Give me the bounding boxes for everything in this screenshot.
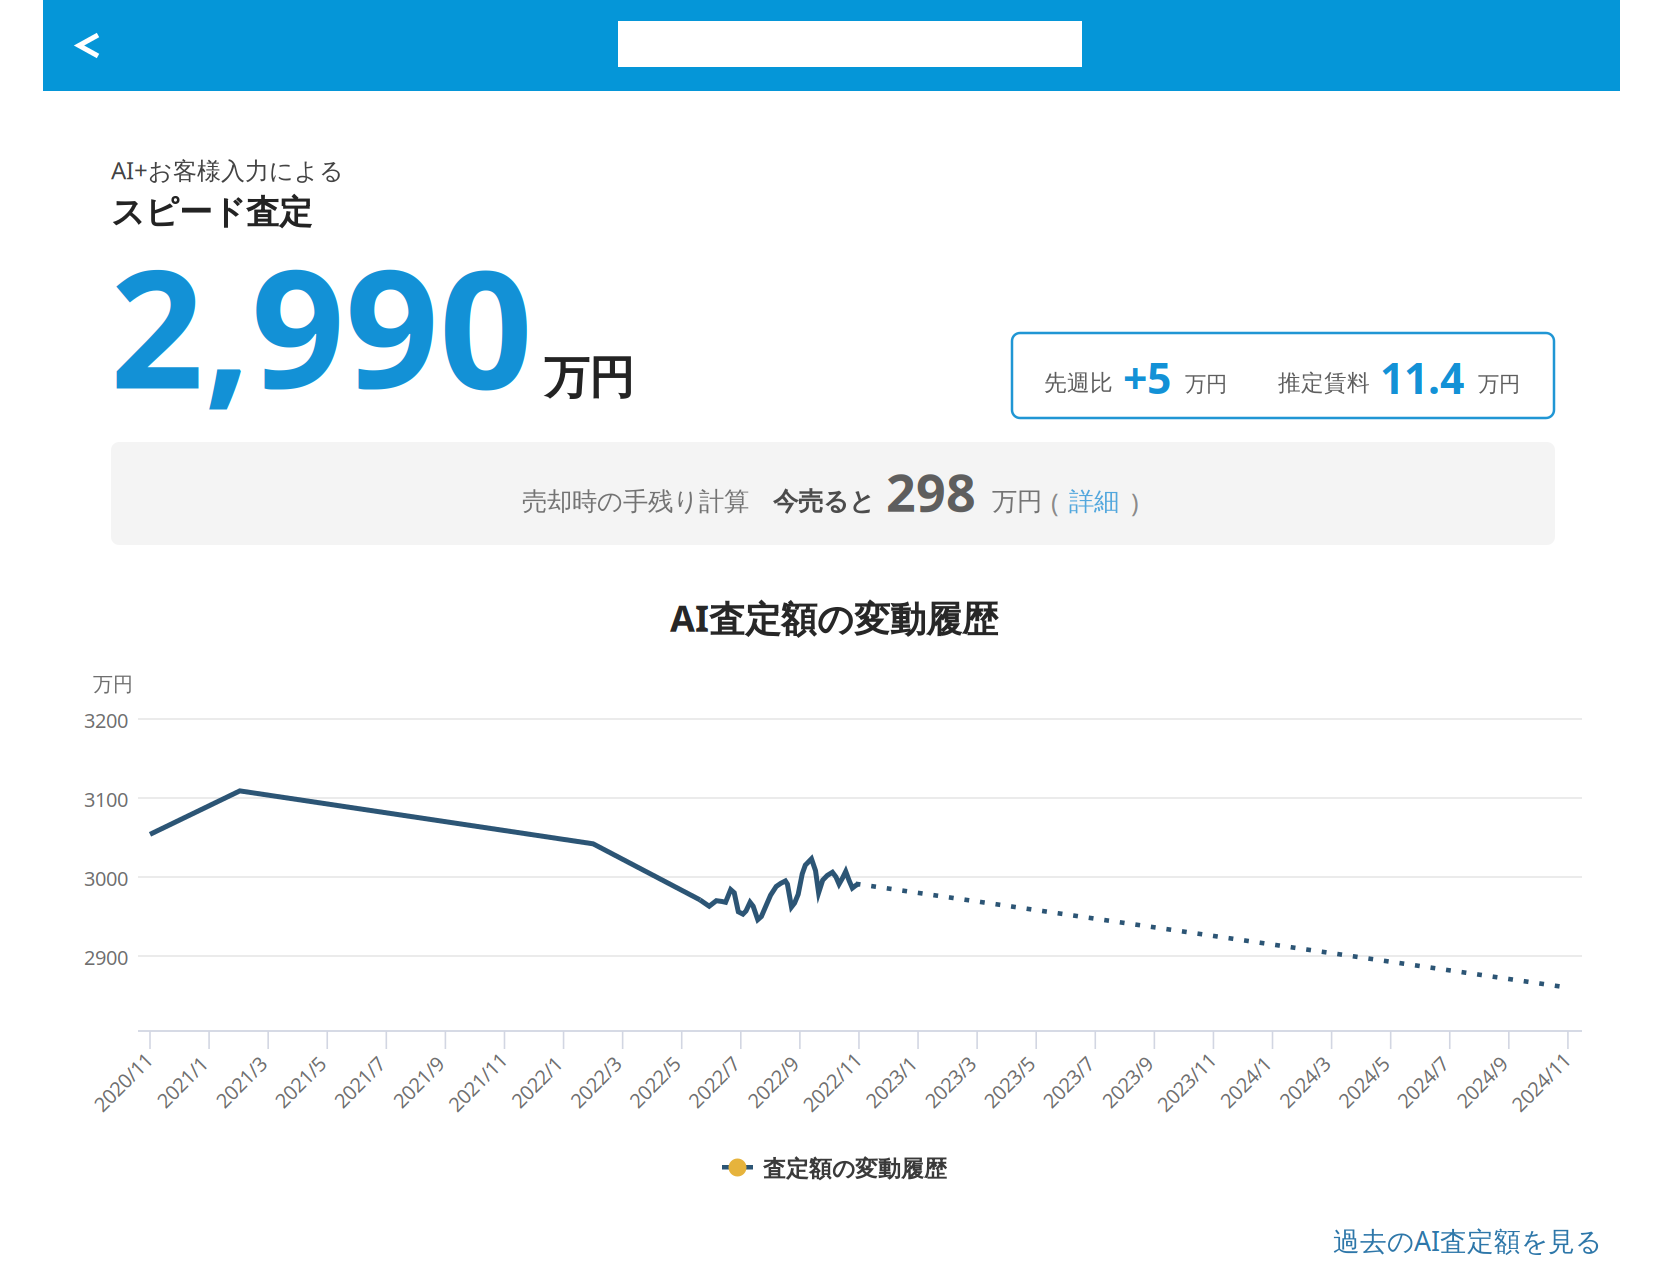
staticText: 2900 [84,944,128,971]
staticText: 2021/5 [269,1069,331,1095]
staticText: 万円 [1185,371,1227,397]
button[interactable]: 過去のAI査定額を見る [1329,1211,1606,1266]
staticText: 先週比 [1044,369,1113,397]
staticText: 詳細 [1069,486,1119,517]
staticText: ) [1131,485,1139,519]
staticText: 推定賃料 [1278,369,1370,397]
staticText: 3000 [84,865,128,892]
staticText: 2021/1 [151,1069,213,1095]
staticText: +5 [1123,349,1171,406]
staticText: 2022/5 [624,1069,686,1095]
staticText: 298 [886,457,976,526]
staticText: 2022/1 [506,1069,568,1095]
staticText: 2021/3 [210,1069,272,1095]
staticText: スピード査定 [111,192,312,233]
staticText: AI査定額の変動履歴 [670,594,998,642]
staticText: 3200 [84,707,128,734]
staticText: 2022/3 [565,1069,627,1095]
staticText: 2023/5 [978,1069,1040,1095]
button[interactable]: 売却時の手残り計算 [522,442,1162,545]
staticText: 2024/9 [1451,1069,1513,1095]
staticText: 2023/1 [860,1069,922,1095]
staticText: 2022/7 [683,1069,745,1095]
staticText: 2022/11 [795,1069,868,1095]
staticText: ( [1051,485,1059,519]
staticText: 2020/11 [86,1069,159,1095]
staticText: AI+お客様入力による [111,154,344,186]
staticText: 2023/11 [1150,1069,1223,1095]
staticText: 2023/7 [1037,1069,1099,1095]
staticText: 2024/1 [1214,1069,1276,1095]
staticText: 3100 [84,786,128,813]
staticText: 過去のAI査定額を見る [1333,1223,1602,1258]
staticText: 万円 [1478,371,1520,397]
staticText: 11.4 [1380,349,1464,406]
staticText: 2024/5 [1333,1069,1395,1095]
staticText: 2024/7 [1392,1069,1454,1095]
staticText: 2021/11 [441,1069,514,1095]
staticText: 売却時の手残り計算 [522,486,749,517]
staticText: 2022/9 [742,1069,804,1095]
staticText: 今売ると [773,486,875,517]
staticText: 2023/9 [1096,1069,1158,1095]
staticText: 万円 [544,350,634,406]
staticText: 万円 [93,672,133,697]
staticText: 2021/9 [387,1069,449,1095]
staticText: 万円 [992,486,1042,517]
staticText: 2023/3 [919,1069,981,1095]
staticText: 2,990 [110,216,533,434]
staticText: 2021/7 [328,1069,390,1095]
button[interactable]: 戻る [47,1,130,90]
staticText: 査定額の変動履歴 [763,1155,947,1183]
staticText: 2024/11 [1504,1069,1577,1095]
staticText: 2024/3 [1274,1069,1336,1095]
